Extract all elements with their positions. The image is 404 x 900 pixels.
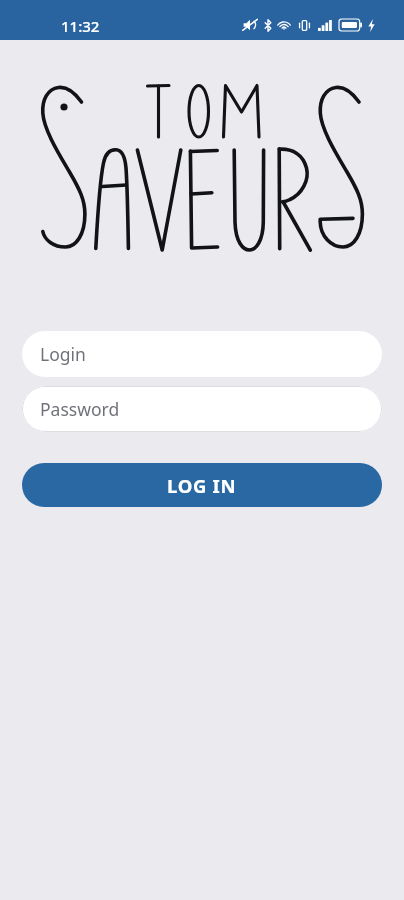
button[interactable]: Password — [22, 386, 382, 432]
other: Vibrate — [298, 19, 312, 32]
other: Silent mode — [242, 18, 258, 32]
staticText: 11:32 — [61, 16, 100, 36]
other: Bluetooth — [264, 19, 272, 32]
staticText: Password — [40, 397, 120, 421]
other: Mobile signal — [318, 20, 333, 31]
other: Tom Saveurs logo — [0, 40, 404, 280]
button[interactable]: Login — [22, 331, 382, 377]
button[interactable]: LOG IN — [22, 463, 382, 507]
other: Battery — [339, 19, 362, 31]
staticText: LOG IN — [167, 473, 237, 498]
other: Wi-Fi — [278, 19, 292, 31]
other: Charging — [368, 19, 375, 32]
staticText: Login — [40, 342, 86, 366]
